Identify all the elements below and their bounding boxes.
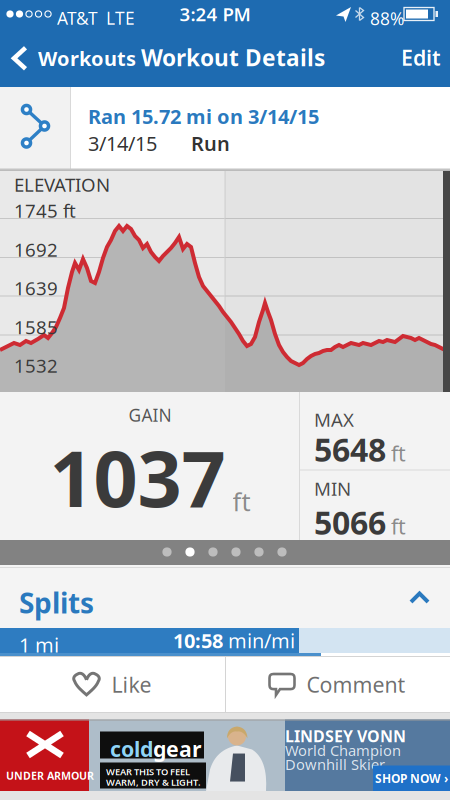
button[interactable]: Ran 15.72 mi on 3/14/15	[0, 87, 450, 170]
staticText: ft	[232, 485, 250, 518]
staticText: ft	[391, 512, 406, 540]
staticText: Workout Details	[141, 42, 325, 72]
staticText: 3:24 PM	[179, 2, 250, 26]
staticText: Like	[111, 670, 151, 699]
staticText: Ran 15.72 mi on 3/14/15	[88, 103, 319, 130]
staticText: 1585	[14, 314, 58, 339]
staticText: SHOP NOW ›	[375, 770, 448, 786]
staticText: 1037	[49, 426, 225, 528]
staticText: gear	[153, 734, 202, 763]
button[interactable]: Collapse splits	[0, 565, 21, 579]
button[interactable]: Workouts	[11, 45, 136, 72]
staticText: UNDER ARMOUR	[6, 768, 94, 783]
button[interactable]: Edit	[401, 43, 441, 72]
staticText: Downhill Skier	[285, 754, 385, 774]
staticText: 1639	[14, 275, 58, 300]
staticText: 3/14/15	[88, 130, 157, 157]
button[interactable]: Comment	[0, 656, 225, 713]
staticText: 1692	[14, 237, 58, 262]
staticText: LINDSEY VONN	[285, 725, 406, 747]
staticText: MAX	[314, 407, 354, 432]
staticText: ft	[391, 439, 406, 467]
staticText: World Champion	[285, 740, 401, 760]
staticText: Comment	[306, 670, 405, 699]
staticText: 10:58 min/mi	[173, 627, 295, 654]
staticText: LTE	[106, 6, 135, 29]
staticText: 5066	[314, 501, 386, 543]
staticText: Workouts	[38, 45, 136, 72]
staticText: Run	[191, 130, 230, 157]
staticText: MIN	[314, 476, 351, 501]
staticText: 5648	[314, 428, 386, 470]
staticText: 1 mi	[19, 631, 59, 658]
staticText: cold	[110, 734, 153, 763]
staticText: GAIN	[128, 403, 171, 426]
staticText: WARM, DRY & LIGHT.	[106, 776, 201, 788]
button[interactable]: Like	[0, 656, 225, 713]
staticText: 1532	[14, 353, 58, 378]
staticText: WEAR THIS TO FEEL	[106, 765, 190, 778]
staticText: Edit	[401, 43, 441, 72]
staticText: 1745 ft	[14, 198, 76, 223]
staticText: 88%	[370, 7, 404, 30]
staticText: ELEVATION	[14, 172, 110, 197]
staticText: Splits	[19, 584, 94, 621]
button[interactable]: Under Armour ColdGear advertisement	[0, 719, 450, 791]
staticText: AT&T	[57, 6, 98, 29]
